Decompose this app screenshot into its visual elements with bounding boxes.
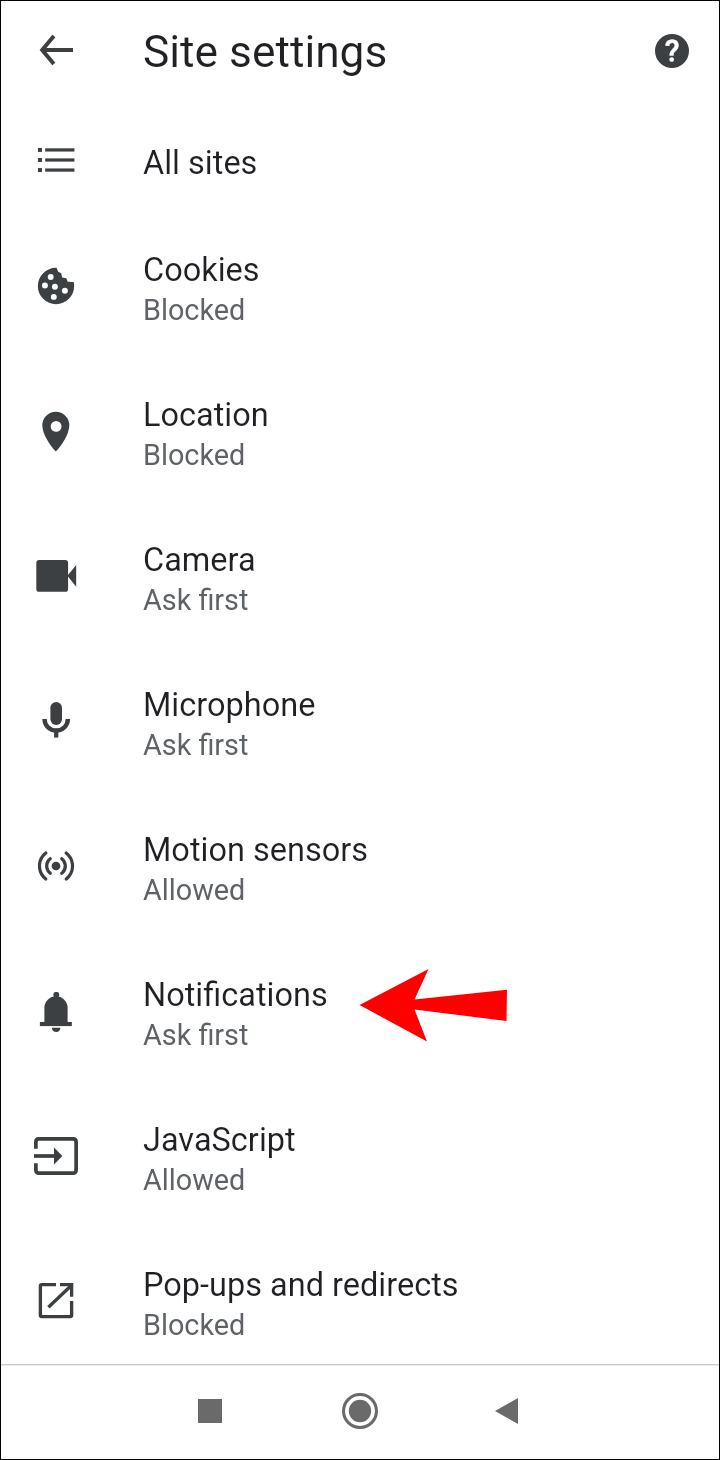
button[interactable]: Motion sensors <box>0 793 720 938</box>
staticText: Location <box>143 396 269 434</box>
button[interactable]: Recent apps <box>163 1376 257 1446</box>
staticText: Blocked <box>143 438 246 472</box>
staticText: Microphone <box>143 686 316 724</box>
button[interactable]: Location <box>0 358 720 503</box>
staticText: Camera <box>143 541 256 579</box>
staticText: Ask first <box>143 728 249 762</box>
button[interactable]: Navigate up <box>22 16 90 84</box>
staticText: Pop-ups and redirects <box>143 1266 459 1304</box>
staticText: Allowed <box>143 1163 246 1197</box>
staticText: ? <box>665 33 680 68</box>
button[interactable]: Cookies <box>0 213 720 358</box>
staticText: Blocked <box>143 293 246 327</box>
button[interactable]: Home <box>313 1376 407 1446</box>
staticText: Blocked <box>143 1308 246 1342</box>
button[interactable]: Pop-ups and redirects <box>0 1228 720 1364</box>
button[interactable]: All sites <box>0 107 720 213</box>
staticText: Site settings <box>143 26 388 78</box>
staticText: Notifications <box>143 976 328 1014</box>
staticText: Cookies <box>143 251 260 289</box>
button[interactable]: Back <box>459 1376 553 1446</box>
staticText: Allowed <box>143 873 246 907</box>
button[interactable]: JavaScript <box>0 1083 720 1228</box>
button[interactable]: Microphone <box>0 648 720 793</box>
button[interactable]: Camera <box>0 503 720 648</box>
button[interactable]: Notifications <box>0 938 720 1083</box>
staticText: JavaScript <box>143 1121 296 1159</box>
button[interactable]: Help <box>638 17 706 85</box>
staticText: Motion sensors <box>143 831 369 869</box>
staticText: Ask first <box>143 583 249 617</box>
staticText: All sites <box>143 144 258 182</box>
staticText: Ask first <box>143 1018 249 1052</box>
